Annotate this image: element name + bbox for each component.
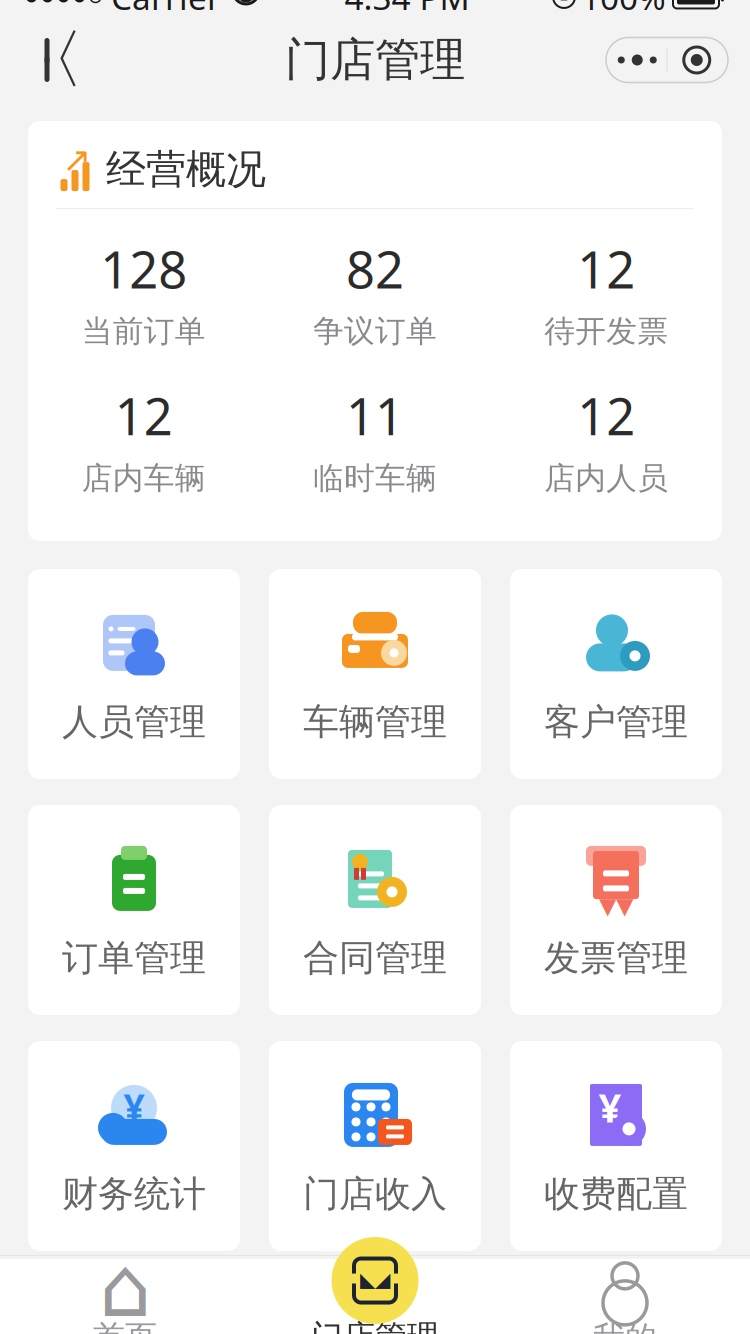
staticText: 店内人员 [544,459,668,497]
staticText: ⌂ [99,1240,151,1334]
button[interactable]: ¥ [28,1041,240,1251]
button[interactable]: More options [606,37,728,82]
button[interactable]: Back [22,30,82,90]
button[interactable]: 客户管理 [510,569,722,779]
button[interactable]: 车辆管理 [269,569,481,779]
staticText: 〈 [20,21,84,99]
staticText: 首页 [93,1317,157,1334]
staticText: 当前订单 [82,312,206,350]
staticText: ◣ [360,1268,375,1291]
button[interactable]: 订单管理 [28,805,240,1015]
staticText: 订单管理 [62,936,206,980]
staticText: 门店管理 [311,1317,439,1334]
staticText: 待开发票 [544,312,668,350]
button[interactable]: 合同管理 [269,805,481,1015]
staticText: 车辆管理 [303,700,447,744]
button[interactable]: 门店管理 [250,1255,500,1334]
button[interactable]: ⌂ [0,1255,250,1334]
staticText: ¥ [123,1082,144,1132]
staticText: 门店管理 [285,32,465,88]
button[interactable]: 人员管理 [28,569,240,779]
staticText: 发票管理 [544,936,688,980]
staticText: 人员管理 [62,700,206,744]
staticText: 4:34 PM [344,0,469,19]
button[interactable]: 门店管理 [331,1237,418,1324]
staticText: 临时车辆 [313,459,437,497]
staticText: 店内车辆 [82,459,206,497]
button[interactable]: 我的 [500,1254,750,1334]
staticText: 经营概况 [106,145,266,194]
staticText: 12 [577,235,635,302]
staticText: 争议订单 [313,312,437,350]
button[interactable]: 门店收入 [269,1041,481,1251]
staticText: ▼ [599,893,616,919]
staticText: 12 [577,382,635,449]
staticText: ◢ [375,1268,390,1291]
staticText: Carrier [111,0,221,19]
staticText: 门店收入 [303,1172,447,1216]
staticText: 我的 [593,1318,657,1334]
staticText: ↗ [62,140,91,179]
staticText: 客户管理 [544,700,688,744]
staticText: 12 [115,382,173,449]
staticText: ▼ [616,893,633,919]
staticText: 82 [346,235,404,302]
staticText: 100% [581,0,666,19]
button[interactable]: ▼ [510,805,722,1015]
staticText: 11 [346,382,404,449]
staticText: 财务统计 [62,1172,206,1216]
staticText: 合同管理 [303,936,447,980]
staticText: 128 [100,235,187,302]
staticText: ¥ [598,1080,621,1133]
staticText: 收费配置 [544,1172,688,1216]
button[interactable]: ¥ [510,1041,722,1251]
